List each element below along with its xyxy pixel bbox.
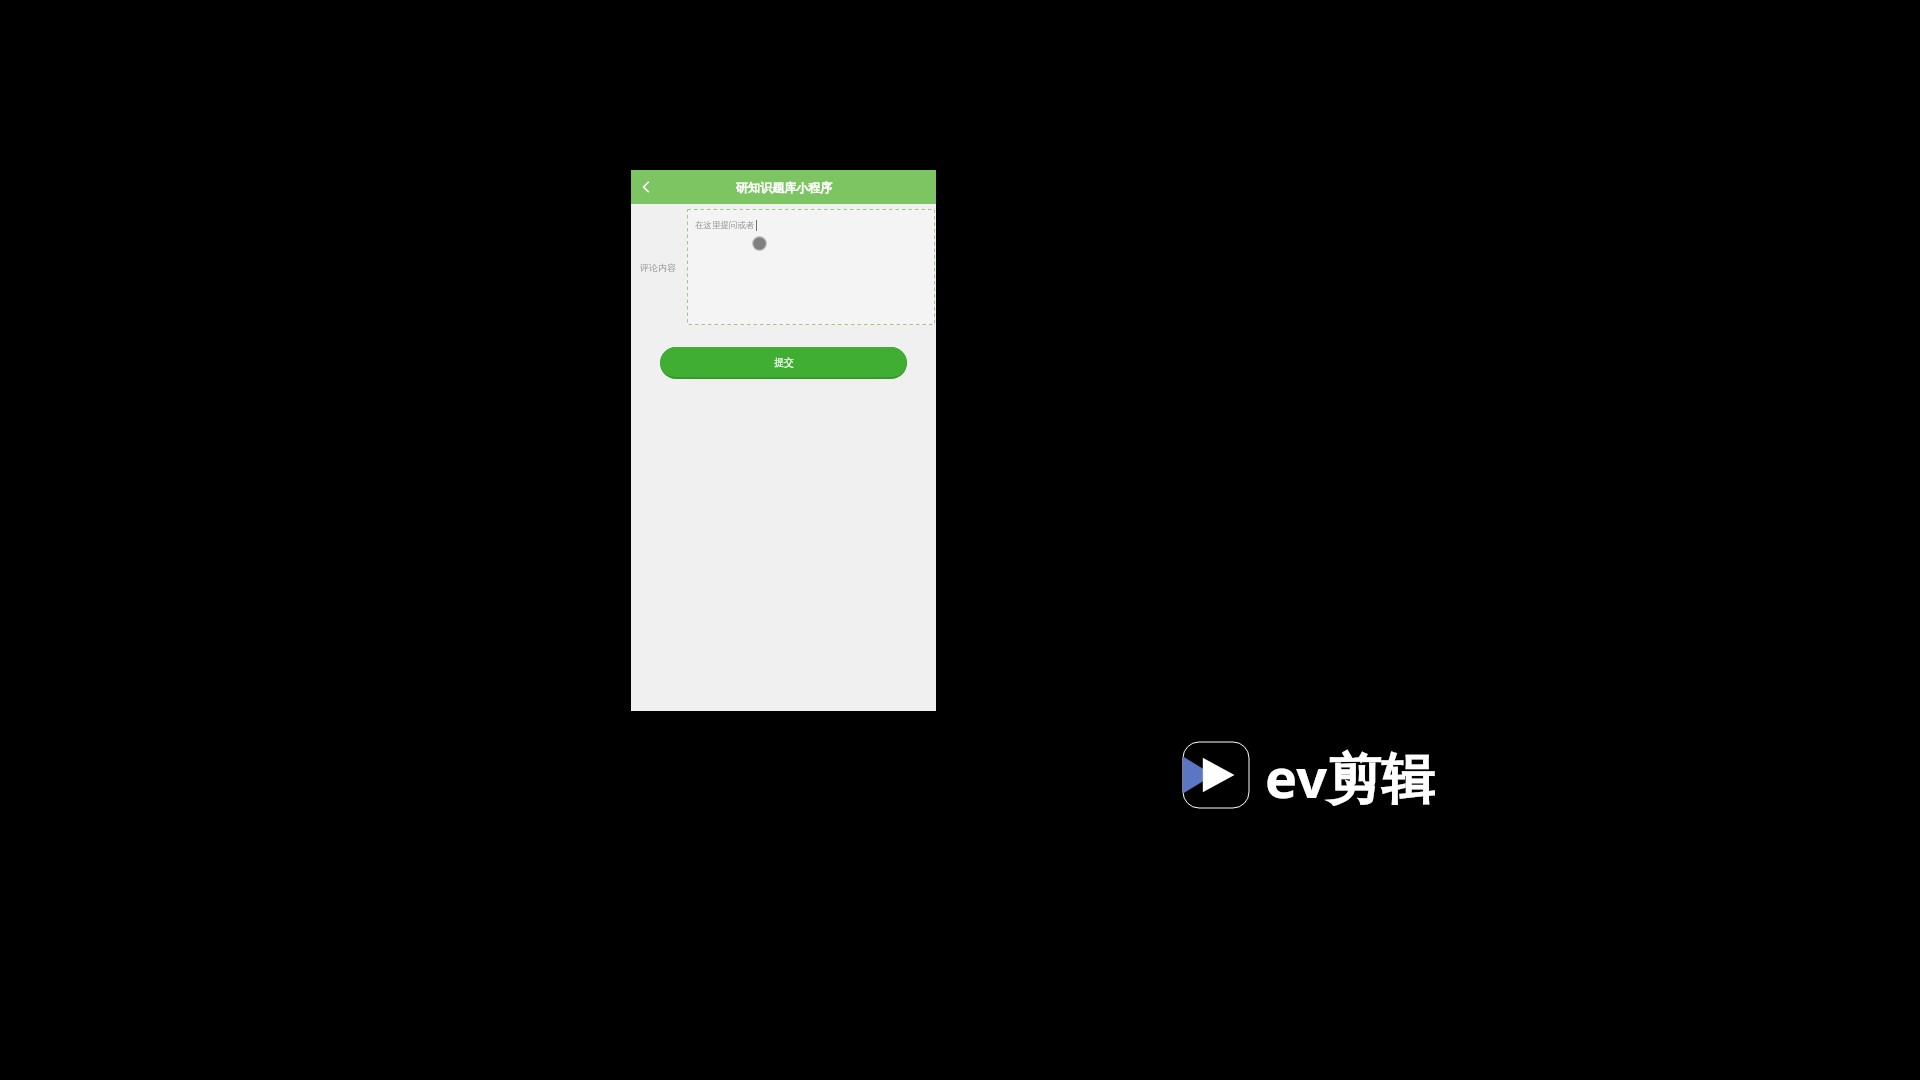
staticText: 提交 bbox=[774, 356, 794, 369]
staticText: 研知识题库小程序 bbox=[736, 180, 832, 195]
button[interactable]: Back bbox=[631, 172, 661, 202]
button[interactable]: 提交 bbox=[660, 347, 907, 377]
staticText: ev剪辑 bbox=[1265, 740, 1435, 810]
staticText: 评论内容 bbox=[640, 262, 676, 273]
button[interactable]: 在这里提问或者 bbox=[687, 209, 935, 325]
staticText: 在这里提问或者 bbox=[695, 220, 755, 231]
